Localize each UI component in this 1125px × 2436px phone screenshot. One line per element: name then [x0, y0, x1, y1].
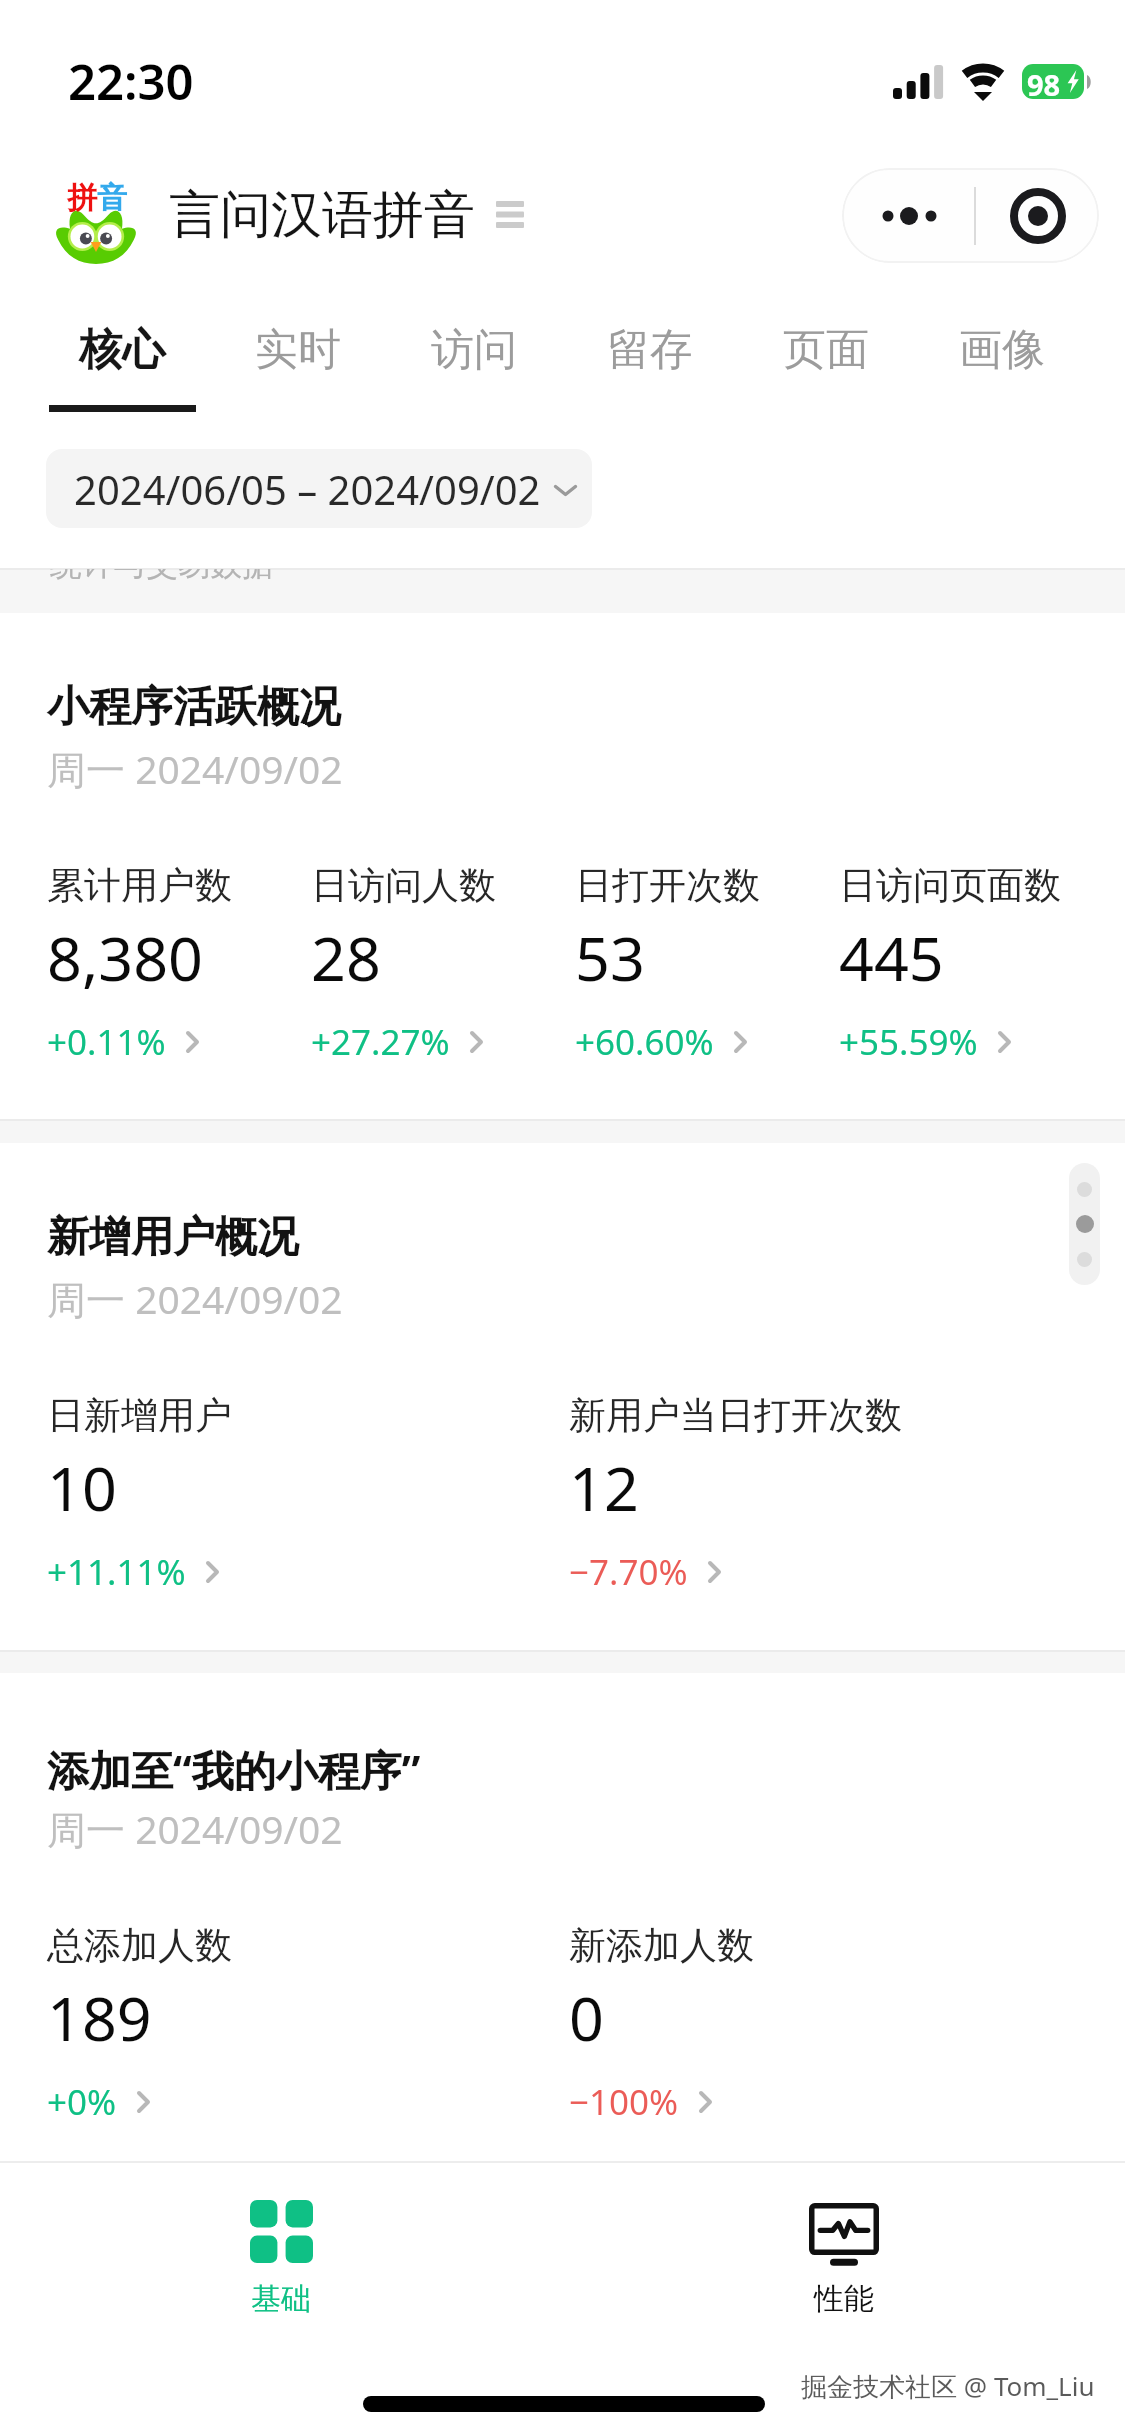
button[interactable]: Close mini program [976, 168, 1099, 263]
button[interactable]: 日访问人数 [311, 858, 575, 1058]
button[interactable]: Page indicator [1069, 1163, 1100, 1285]
staticText: 音 [97, 179, 127, 217]
staticText: −7.70% [569, 1548, 688, 1596]
staticText: 掘金技术社区 @ Tom_Liu [801, 2368, 1095, 2404]
staticText: 统计与交易数据 [50, 569, 274, 583]
staticText: 日打开次数 [575, 862, 760, 909]
staticText: +60.60% [575, 1018, 714, 1066]
staticText: 新增用户概况 [47, 1211, 299, 1264]
staticText: 0 [569, 1976, 604, 2059]
staticText: 10 [47, 1446, 117, 1529]
staticText: 小程序活跃概况 [47, 681, 341, 734]
staticText: 28 [311, 916, 381, 999]
button[interactable]: 画像 [914, 300, 1090, 418]
staticText: 189 [47, 1976, 152, 2059]
button[interactable]: 日访问页面数 [839, 858, 1103, 1058]
staticText: 2024/06/05 – 2024/09/02 [74, 462, 541, 516]
staticText: 总添加人数 [47, 1922, 232, 1969]
staticText: 日访问人数 [311, 862, 496, 909]
button[interactable]: 2024/06/05 – 2024/09/02 [46, 449, 592, 528]
button[interactable]: 核心 [34, 300, 210, 418]
button[interactable]: 基础 [0, 2163, 562, 2321]
staticText: 53 [575, 916, 645, 999]
button[interactable]: 总添加人数 [47, 1918, 569, 2118]
staticText: 周一 2024/09/02 [47, 1802, 343, 1855]
staticText: 页面 [783, 323, 869, 377]
staticText: 8,380 [47, 916, 203, 999]
staticText: 添加至“我的小程序” [47, 1741, 421, 1798]
staticText: −100% [569, 2078, 679, 2126]
staticText: 日新增用户 [47, 1392, 232, 1439]
button[interactable]: 实时 [210, 300, 386, 418]
staticText: 基础 [251, 2280, 311, 2318]
staticText: 访问 [431, 323, 517, 377]
button[interactable]: 性能 [562, 2163, 1125, 2321]
staticText: +27.27% [311, 1018, 450, 1066]
staticText: 实时 [255, 323, 341, 377]
button[interactable]: 访问 [386, 300, 562, 418]
staticText: 22:30 [68, 48, 194, 115]
staticText: +55.59% [839, 1018, 978, 1066]
staticText: 新添加人数 [569, 1922, 754, 1969]
staticText: 周一 2024/09/02 [47, 1272, 343, 1325]
button[interactable]: 日新增用户 [47, 1388, 569, 1588]
staticText: 性能 [814, 2280, 874, 2318]
staticText: +11.11% [47, 1548, 186, 1596]
button[interactable]: More options [842, 168, 974, 263]
staticText: 累计用户数 [47, 862, 232, 909]
staticText: 拼 [67, 179, 97, 217]
staticText: 新用户当日打开次数 [569, 1392, 902, 1439]
button[interactable]: 累计用户数 [47, 858, 311, 1058]
staticText: 留存 [607, 323, 693, 377]
button[interactable]: 新用户当日打开次数 [569, 1388, 1091, 1588]
staticText: 画像 [959, 323, 1045, 377]
staticText: 核心 [79, 323, 165, 377]
staticText: 98 [1027, 65, 1061, 99]
staticText: 445 [839, 916, 944, 999]
button[interactable]: 新添加人数 [569, 1918, 1091, 2118]
button[interactable]: 页面 [738, 300, 914, 418]
staticText: 言问汉语拼音 [169, 183, 475, 247]
staticText: +0% [47, 2078, 117, 2126]
staticText: 周一 2024/09/02 [47, 742, 343, 795]
staticText: +0.11% [47, 1018, 166, 1066]
staticText: 日访问页面数 [839, 862, 1061, 909]
button[interactable]: 留存 [562, 300, 738, 418]
button[interactable]: 日打开次数 [575, 858, 839, 1058]
staticText: 12 [569, 1446, 639, 1529]
